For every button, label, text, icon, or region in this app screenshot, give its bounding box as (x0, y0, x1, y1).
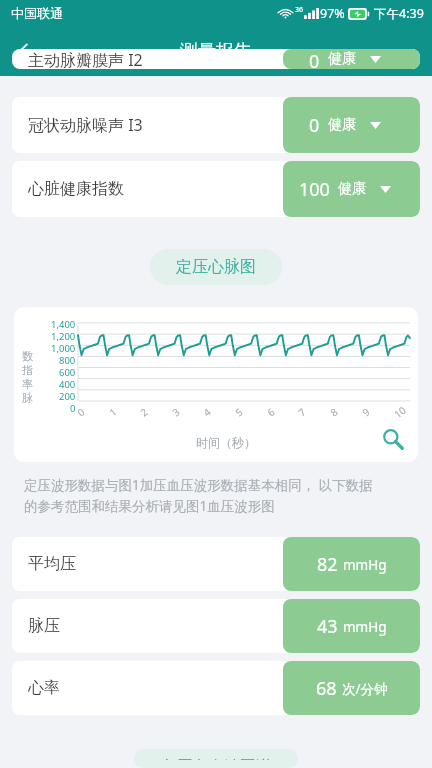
staticText: 4 (200, 405, 214, 419)
staticText: 中国联通 (11, 5, 63, 21)
staticText: 43 (317, 614, 338, 639)
button[interactable]: Back (0, 27, 48, 75)
staticText: 0 (70, 402, 76, 414)
staticText: 心率 (28, 678, 60, 698)
staticText: 400 (59, 378, 76, 390)
staticText: 健康 (328, 50, 356, 68)
staticText: 800 (59, 354, 76, 366)
button[interactable]: 脉压 (12, 599, 420, 653)
button[interactable]: 定压心脉图 (150, 249, 282, 285)
staticText: 定压心声波图谱 (160, 757, 272, 760)
button[interactable]: 平均压 (12, 537, 420, 591)
staticText: 68 (316, 676, 337, 701)
staticText: 7 (295, 405, 309, 419)
staticText: 测量报告 (180, 40, 252, 63)
staticText: 1,000 (51, 342, 76, 354)
staticText: 600 (59, 366, 76, 378)
staticText: 主动脉瓣膜声 I2 (28, 49, 143, 69)
staticText: 次/分钟 (342, 680, 388, 698)
staticText: mmHg (343, 618, 387, 636)
staticText: 指 (22, 363, 33, 377)
button[interactable]: 定压心声波图谱 (134, 749, 298, 768)
staticText: 定压波形数据与图1加压血压波形数据基本相同， 以下数据 的参考范围和结果分析请见… (24, 476, 408, 515)
staticText: 健康 (328, 116, 356, 134)
staticText: 脉压 (28, 616, 60, 636)
staticText: mmHg (343, 556, 387, 574)
staticText: 率 (22, 377, 33, 391)
staticText: 0 (309, 113, 320, 138)
staticText: 1,400 (51, 318, 76, 330)
staticText: 时间（秒） (196, 435, 256, 450)
staticText: 心脏健康指数 (28, 179, 124, 199)
staticText: 10 (391, 403, 409, 421)
staticText: 定压心脉图 (176, 257, 256, 277)
staticText: 36 (295, 5, 304, 15)
staticText: 1 (106, 405, 120, 419)
staticText: 200 (59, 390, 76, 402)
staticText: 冠状动脉噪声 I3 (28, 114, 143, 136)
staticText: 0 (74, 405, 88, 419)
staticText: 9 (359, 405, 373, 419)
staticText: 数 (22, 349, 33, 363)
button[interactable]: 心脏健康指数 (12, 161, 420, 217)
button[interactable]: Zoom chart (376, 422, 410, 456)
staticText: 3 (169, 405, 183, 419)
staticText: 100 (299, 177, 330, 202)
staticText: 5 (232, 405, 246, 419)
staticText: 2 (137, 405, 151, 419)
staticText: 8 (327, 405, 341, 419)
staticText: 6 (264, 405, 278, 419)
staticText: 1,200 (51, 330, 76, 342)
button[interactable]: 心率 (12, 661, 420, 715)
staticText: 脉 (22, 391, 33, 405)
staticText: 下午4:39 (374, 5, 424, 22)
staticText: 97% (320, 5, 345, 22)
staticText: 健康 (338, 180, 366, 198)
staticText: 平均压 (28, 554, 76, 574)
staticText: 82 (317, 552, 338, 577)
button[interactable]: 冠状动脉噪声 I3 (12, 97, 420, 153)
staticText: 0 (309, 49, 320, 69)
